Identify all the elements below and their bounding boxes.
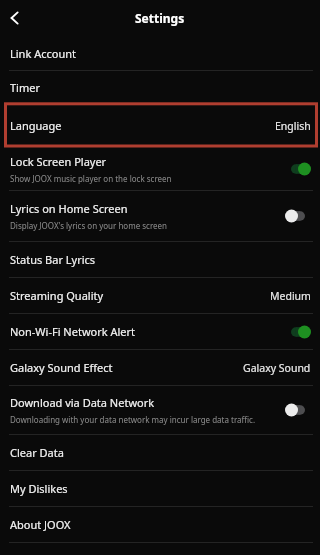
- staticText: Link Account: [10, 46, 76, 61]
- staticText: Non-Wi-Fi Network Alert: [10, 324, 136, 339]
- staticText: Lyrics on Home Screen: [10, 201, 128, 216]
- staticText: Show JOOX music player on the lock scree…: [10, 173, 172, 184]
- button[interactable]: Link Account: [0, 36, 320, 70]
- button[interactable]: Download via Data Network: [0, 386, 320, 434]
- button[interactable]: Lock Screen Player: [0, 147, 320, 190]
- button[interactable]: Clear Data: [0, 435, 320, 470]
- button[interactable]: Language: [0, 105, 320, 146]
- staticText: Streaming Quality: [10, 288, 104, 303]
- button[interactable]: Status Bar Lyrics: [0, 242, 320, 277]
- button[interactable]: Back: [6, 6, 30, 30]
- staticText: About JOOX: [10, 517, 71, 532]
- staticText: Galaxy Sound Effect: [10, 360, 113, 375]
- staticText: Galaxy Sound: [243, 361, 311, 375]
- staticText: Status Bar Lyrics: [10, 252, 96, 267]
- button[interactable]: Streaming Quality: [0, 278, 320, 313]
- staticText: Language: [10, 118, 62, 133]
- button[interactable]: Lyrics on Home Screen: [0, 191, 320, 241]
- staticText: Settings: [135, 10, 185, 26]
- staticText: My Dislikes: [10, 481, 68, 496]
- button[interactable]: About JOOX: [0, 507, 320, 542]
- button[interactable]: Galaxy Sound Effect: [0, 350, 320, 385]
- button[interactable]: My Dislikes: [0, 471, 320, 506]
- staticText: Download via Data Network: [10, 395, 155, 410]
- staticText: Clear Data: [10, 445, 64, 460]
- staticText: Downloading with your data network may i…: [10, 414, 256, 425]
- button[interactable]: Non-Wi-Fi Network Alert: [0, 314, 320, 349]
- staticText: Timer: [10, 80, 40, 95]
- staticText: Lock Screen Player: [10, 154, 107, 169]
- button[interactable]: Timer: [0, 71, 320, 104]
- staticText: Display JOOX's lyrics on your home scree…: [10, 220, 168, 231]
- staticText: Medium: [270, 289, 311, 303]
- staticText: English: [275, 119, 311, 133]
